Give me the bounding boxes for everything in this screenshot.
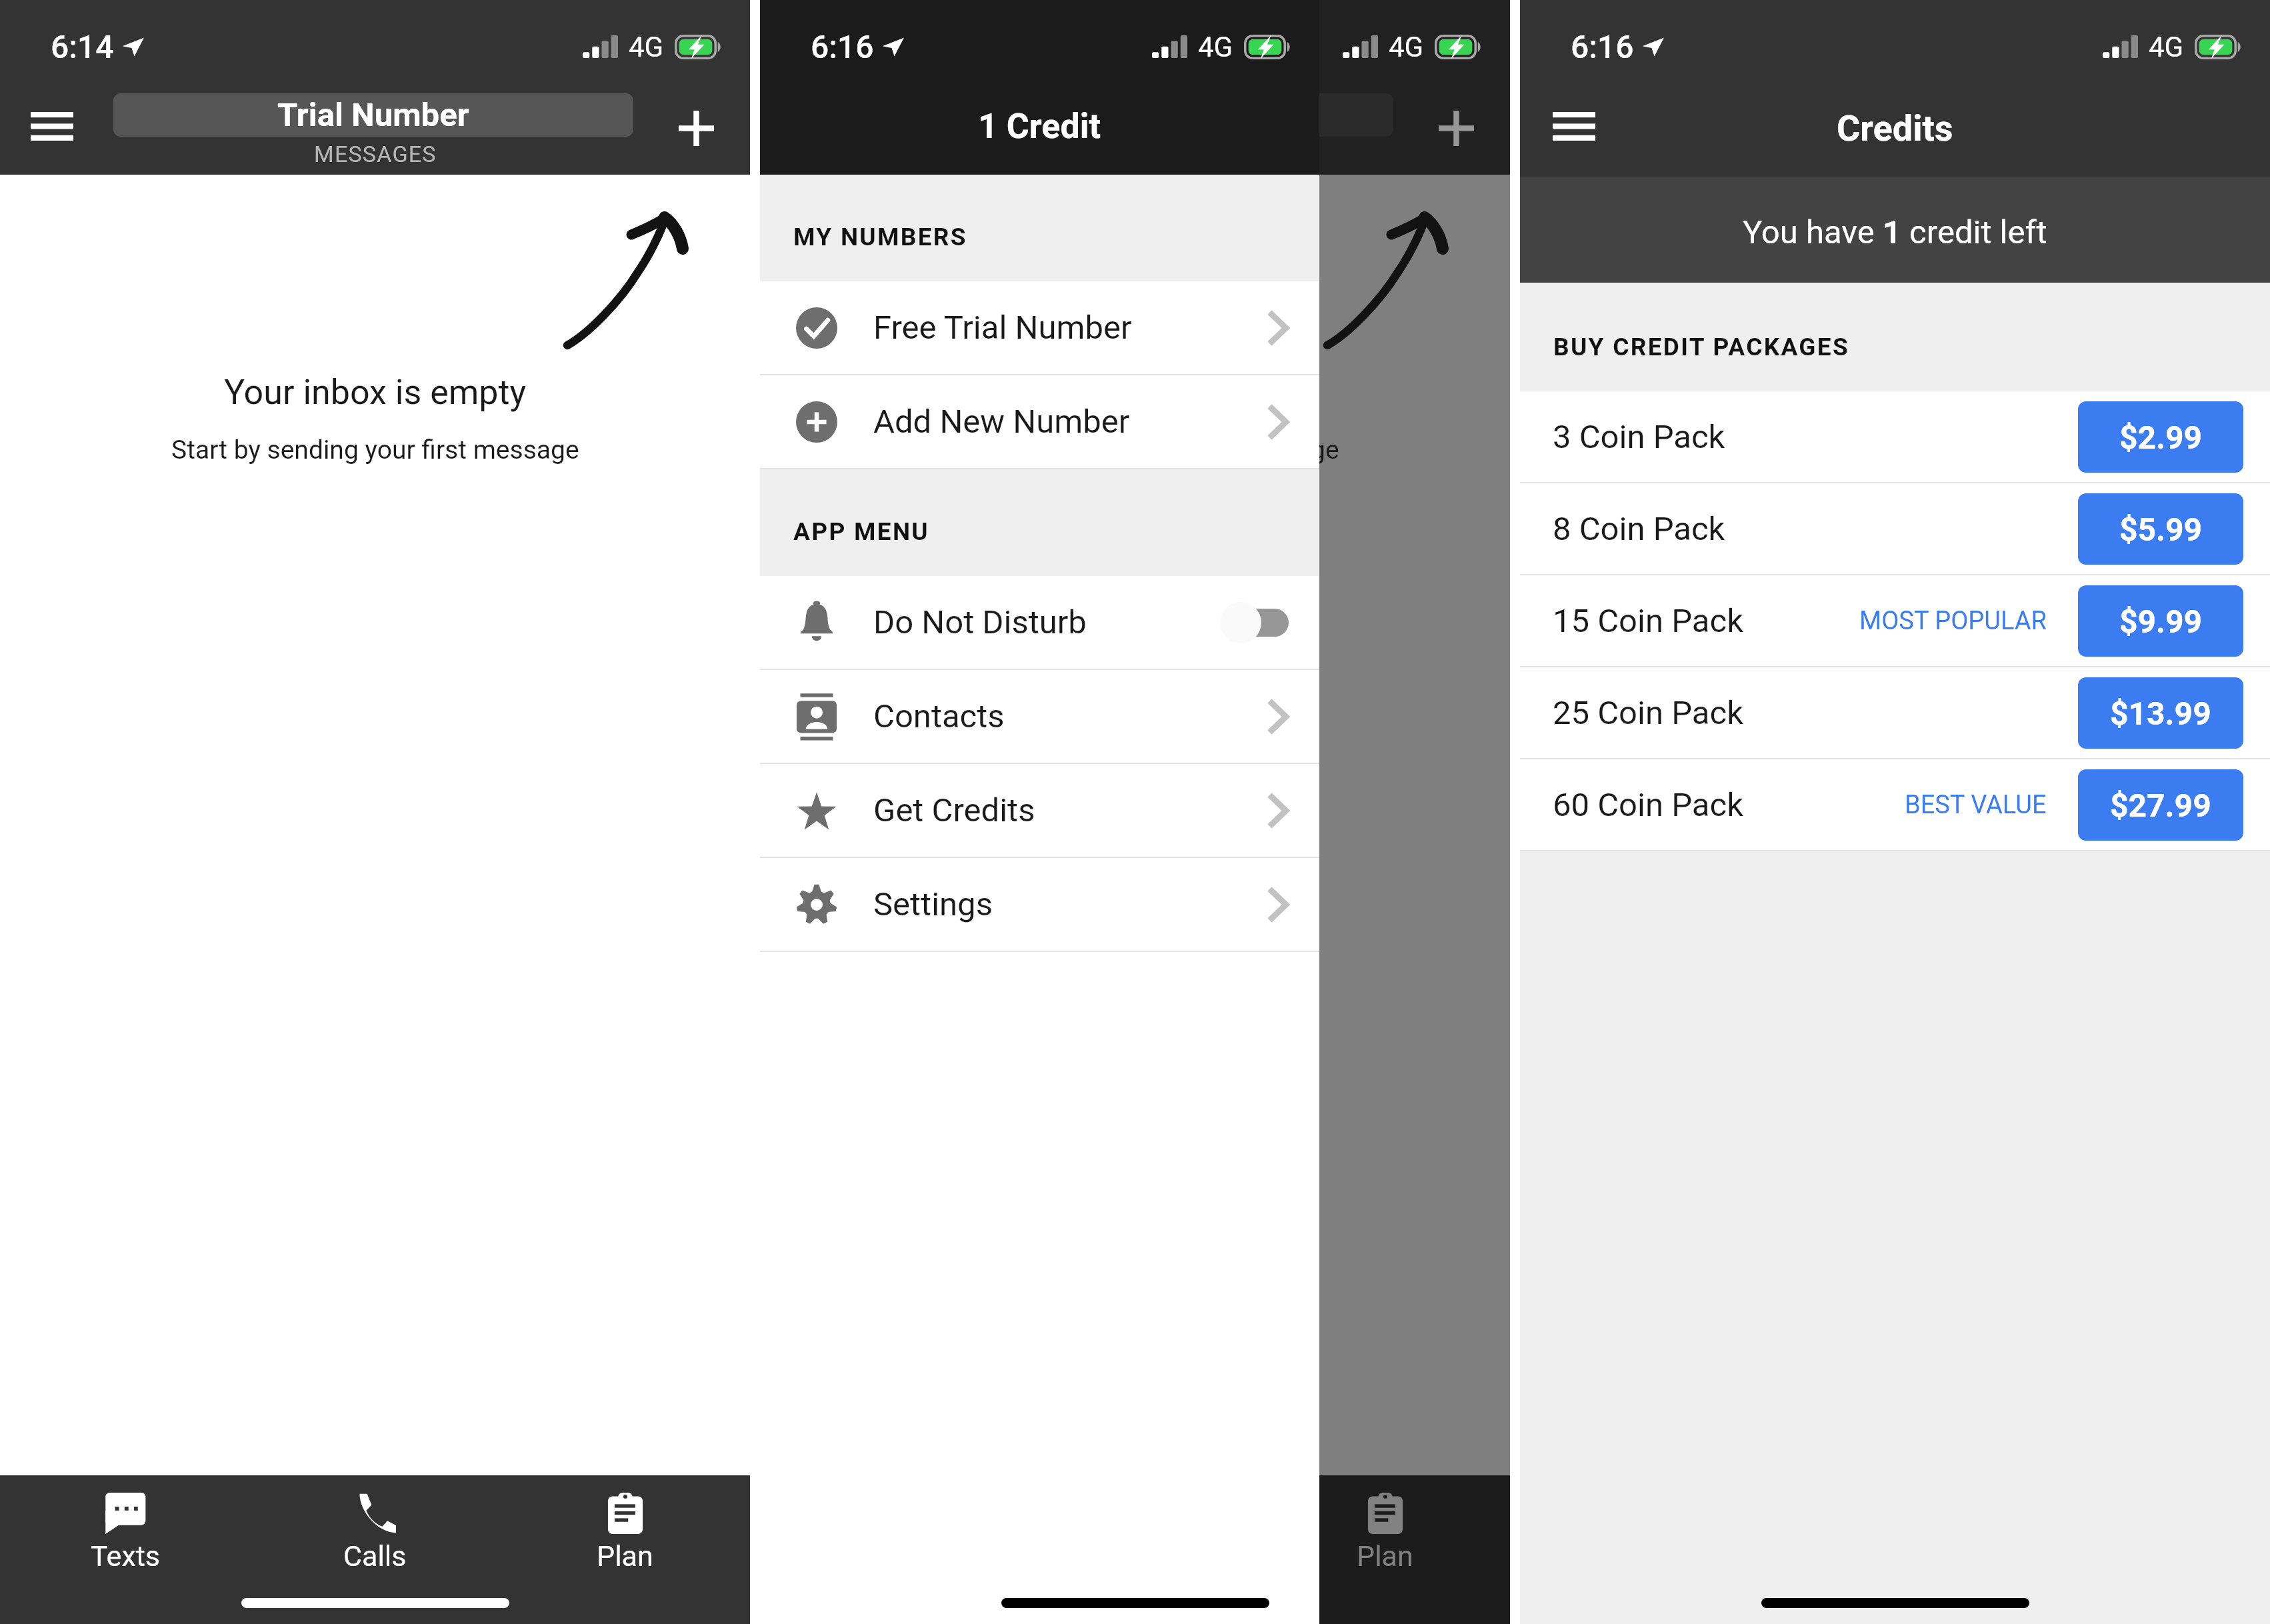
staticText: Settings <box>873 885 993 923</box>
staticText: MOST POPULAR <box>1859 606 2047 636</box>
button[interactable]: $27.99 <box>2078 769 2243 841</box>
button[interactable]: Settings <box>760 858 1319 951</box>
staticText: Start by sending your first message <box>171 435 579 465</box>
staticText: MESSAGES <box>314 141 437 167</box>
staticText: 3 Coin Pack <box>1553 418 1725 456</box>
staticText: You have 1 credit left <box>1743 213 2047 251</box>
staticText: $9.99 <box>2119 603 2203 640</box>
staticText: Do Not Disturb <box>873 603 1087 641</box>
button[interactable]: $5.99 <box>2078 493 2243 565</box>
staticText: Calls <box>343 1539 407 1573</box>
staticText: $2.99 <box>2119 419 2203 456</box>
staticText: BUY CREDIT PACKAGES <box>1553 333 1850 361</box>
button[interactable]: Texts <box>0 1475 250 1589</box>
button[interactable]: 3 Coin Pack <box>1520 391 2270 482</box>
button[interactable]: 60 Coin Pack <box>1520 759 2270 850</box>
staticText: $27.99 <box>2110 787 2211 824</box>
staticText: Contacts <box>873 697 1005 735</box>
staticText: BEST VALUE <box>1905 790 2047 820</box>
staticText: Start by sending your first message <box>931 435 1339 465</box>
button[interactable]: 25 Coin Pack <box>1520 667 2270 758</box>
button[interactable]: Plan <box>1260 1475 1510 1589</box>
staticText: 6:16 <box>1571 28 1634 65</box>
staticText: $5.99 <box>2119 511 2203 548</box>
staticText: 1 Credit <box>978 106 1101 147</box>
staticText: 15 Coin Pack <box>1553 602 1743 640</box>
button[interactable]: $13.99 <box>2078 677 2243 749</box>
staticText: Add New Number <box>873 403 1130 441</box>
button[interactable]: Add New Number <box>760 375 1319 468</box>
staticText: Plan <box>597 1539 653 1573</box>
button[interactable]: Contacts <box>760 670 1319 763</box>
button[interactable]: $9.99 <box>2078 585 2243 657</box>
button[interactable]: Do Not Disturb <box>760 576 1319 669</box>
button[interactable]: $2.99 <box>2078 401 2243 473</box>
staticText: 25 Coin Pack <box>1553 694 1743 732</box>
staticText: MY NUMBERS <box>793 223 967 251</box>
button[interactable]: Menu <box>1531 91 1617 161</box>
staticText: 8 Coin Pack <box>1553 510 1725 548</box>
button[interactable]: Get Credits <box>760 764 1319 857</box>
staticText: Credits <box>1837 107 1953 149</box>
button[interactable]: Toggle Do Not Disturb <box>1220 601 1289 643</box>
button[interactable]: Plan <box>500 1475 750 1589</box>
staticText: 4G <box>629 31 664 63</box>
staticText: 4G <box>2149 31 2184 63</box>
button[interactable]: Trial Number <box>113 93 633 137</box>
staticText: 4G <box>1198 31 1233 63</box>
button[interactable]: 8 Coin Pack <box>1520 483 2270 574</box>
staticText: $13.99 <box>2110 695 2211 732</box>
staticText: 60 Coin Pack <box>1553 786 1743 824</box>
staticText: Texts <box>91 1539 160 1573</box>
staticText: Plan <box>1357 1539 1413 1573</box>
staticText: Trial Number <box>277 96 469 134</box>
button[interactable]: Free Trial Number <box>760 281 1319 374</box>
staticText: Your inbox is empty <box>224 372 527 413</box>
staticText: 6:16 <box>811 28 874 65</box>
staticText: 6:16 <box>811 28 874 65</box>
button[interactable]: Calls <box>250 1475 500 1589</box>
staticText: 6:14 <box>51 28 114 65</box>
staticText: Your inbox is empty <box>984 372 1287 413</box>
staticText: Free Trial Number <box>873 309 1132 347</box>
button[interactable]: Add <box>653 93 739 163</box>
staticText: Get Credits <box>873 791 1035 829</box>
staticText: 4G <box>1389 31 1424 63</box>
button[interactable]: 15 Coin Pack <box>1520 575 2270 666</box>
button[interactable]: Menu <box>9 93 95 159</box>
staticText: APP MENU <box>793 517 930 546</box>
